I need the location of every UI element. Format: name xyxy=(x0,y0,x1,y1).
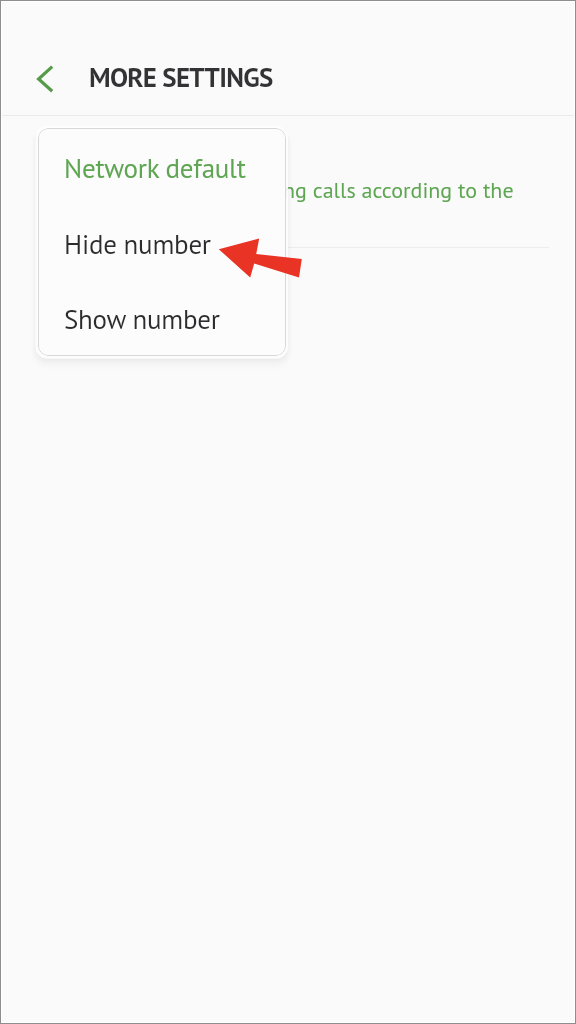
button[interactable]: Hide number xyxy=(38,206,286,282)
staticText: MORE SETTINGS xyxy=(89,60,273,95)
button[interactable]: Show number xyxy=(38,282,286,356)
button[interactable]: Back xyxy=(20,54,68,102)
staticText: Hide number xyxy=(64,227,211,262)
staticText: ng calls according to the xyxy=(283,176,514,204)
staticText: Network default xyxy=(64,151,246,186)
staticText: Show number xyxy=(64,302,220,337)
button[interactable]: Network default xyxy=(38,130,286,206)
